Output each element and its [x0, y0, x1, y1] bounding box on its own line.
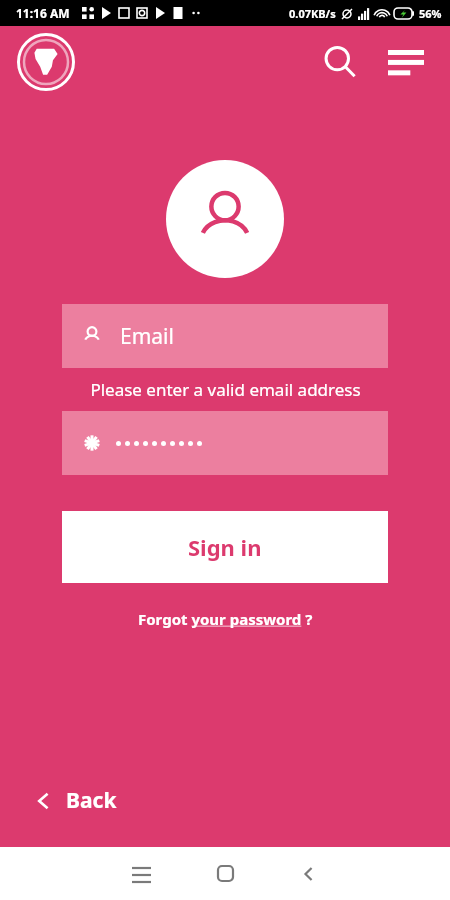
button[interactable] [62, 411, 388, 475]
button[interactable]: Back [28, 780, 123, 821]
button[interactable]: Sign in [62, 511, 388, 583]
button[interactable]: Email [62, 304, 388, 368]
button[interactable]: Search [314, 36, 366, 88]
staticText: Sign in [188, 532, 262, 562]
staticText: Back [66, 786, 117, 815]
button[interactable]: Back [268, 847, 350, 900]
button[interactable]: Recent apps [100, 847, 182, 900]
staticText: 0.07KB/s [289, 6, 336, 21]
button[interactable]: Menu [380, 36, 432, 88]
button[interactable]: Home [184, 847, 266, 900]
button[interactable]: Logo [17, 33, 75, 91]
staticText: Email [120, 322, 174, 351]
staticText: Please enter a valid email address [90, 378, 361, 401]
staticText: 11:16 AM [16, 5, 70, 21]
staticText: Forgot your password ? [138, 609, 313, 629]
button[interactable]: Forgot your password ? [128, 605, 323, 633]
staticText: 56% [419, 6, 442, 21]
